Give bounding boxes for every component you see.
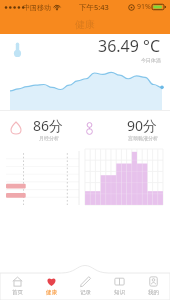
other: Temperature bbox=[13, 40, 22, 58]
staticText: 健康 bbox=[46, 289, 57, 296]
button[interactable]: 86分 bbox=[0, 111, 85, 145]
staticText: 下午5:43 bbox=[79, 2, 109, 12]
staticText: 中国移动 bbox=[23, 3, 51, 12]
staticText: 记录 bbox=[80, 289, 91, 296]
button[interactable]: 首页 bbox=[0, 274, 34, 298]
staticText: 91% bbox=[137, 2, 151, 12]
staticText: 首页 bbox=[12, 289, 23, 296]
staticText: 健康 bbox=[75, 18, 95, 31]
button[interactable]: 知识 bbox=[102, 274, 136, 298]
button[interactable]: 健康 bbox=[34, 274, 68, 298]
staticText: 90分 bbox=[127, 116, 158, 135]
staticText: 我的 bbox=[148, 289, 159, 296]
staticText: 宫颈黏液分析 bbox=[128, 135, 158, 141]
staticText: 86分 bbox=[33, 116, 64, 135]
staticText: 36.49 °C bbox=[98, 35, 161, 57]
button[interactable]: 我的 bbox=[136, 274, 170, 298]
button[interactable]: 记录 bbox=[68, 274, 102, 298]
staticText: 今日体温 bbox=[141, 57, 161, 63]
staticText: 知识 bbox=[114, 289, 125, 296]
staticText: 月经分析 bbox=[39, 135, 59, 141]
button[interactable]: 90分 bbox=[85, 111, 170, 145]
